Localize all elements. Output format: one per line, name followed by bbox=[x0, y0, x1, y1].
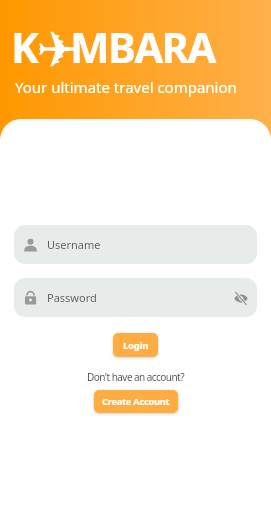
staticText: MBARA bbox=[70, 18, 215, 75]
staticText: Don't have an account? bbox=[87, 370, 184, 384]
staticText: Password bbox=[47, 290, 97, 305]
staticText: Username bbox=[47, 237, 101, 252]
button[interactable]: Username bbox=[14, 225, 257, 264]
button[interactable]: Show password bbox=[229, 286, 253, 310]
staticText: Your ultimate travel companion bbox=[15, 77, 237, 97]
staticText: K bbox=[11, 18, 38, 75]
button[interactable]: Create Account bbox=[94, 390, 178, 413]
button[interactable]: Password bbox=[14, 278, 257, 317]
staticText: Create Account bbox=[102, 395, 170, 408]
staticText: Login bbox=[123, 339, 149, 352]
button[interactable]: Login bbox=[113, 333, 158, 357]
